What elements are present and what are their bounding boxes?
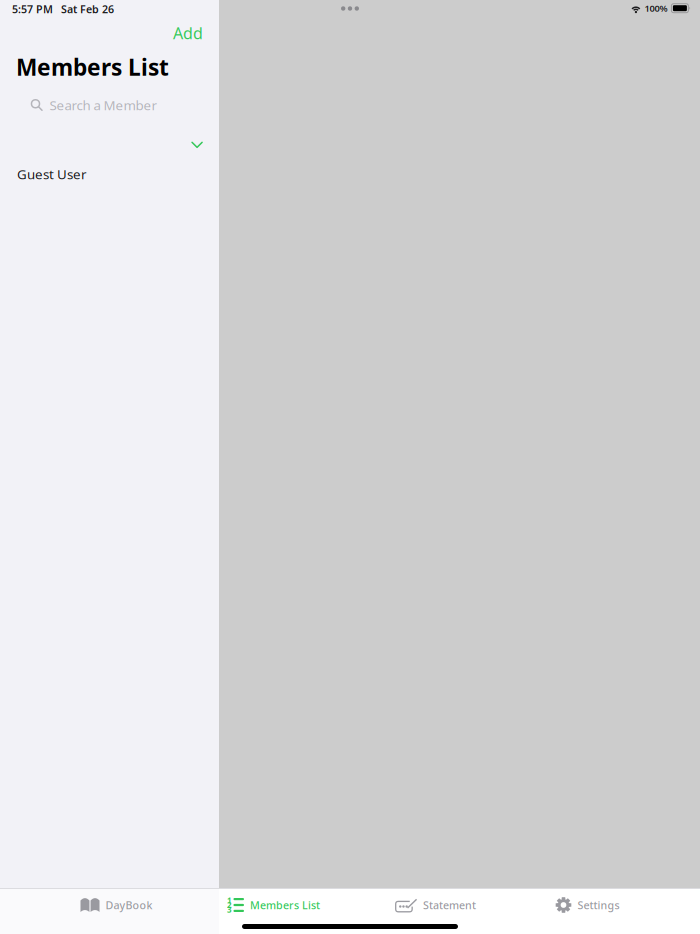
button[interactable]: Settings (548, 888, 626, 921)
staticText: Settings (577, 898, 619, 912)
staticText: Members List (16, 52, 169, 82)
staticText: Members List (250, 898, 320, 912)
staticText: Sat Feb 26 (61, 2, 114, 16)
staticText: 3 (227, 904, 232, 915)
staticText: Add (173, 22, 203, 44)
button[interactable]: 1 (220, 888, 327, 921)
staticText: 2 (227, 900, 232, 910)
staticText: Statement (423, 898, 476, 912)
button[interactable]: Guest User (0, 160, 219, 188)
button[interactable]: Statement (388, 888, 483, 921)
button[interactable]: Collapse section (182, 126, 212, 158)
staticText: 5:57 PM (12, 2, 53, 16)
button[interactable]: Search a Member (0, 86, 219, 124)
staticText: Search a Member (49, 96, 157, 114)
staticText: Guest User (17, 165, 87, 183)
button[interactable]: Add (165, 17, 211, 49)
staticText: DayBook (105, 898, 152, 912)
staticText: 1 (227, 895, 232, 906)
button[interactable]: DayBook (73, 888, 159, 921)
staticText: 100% (644, 2, 667, 14)
